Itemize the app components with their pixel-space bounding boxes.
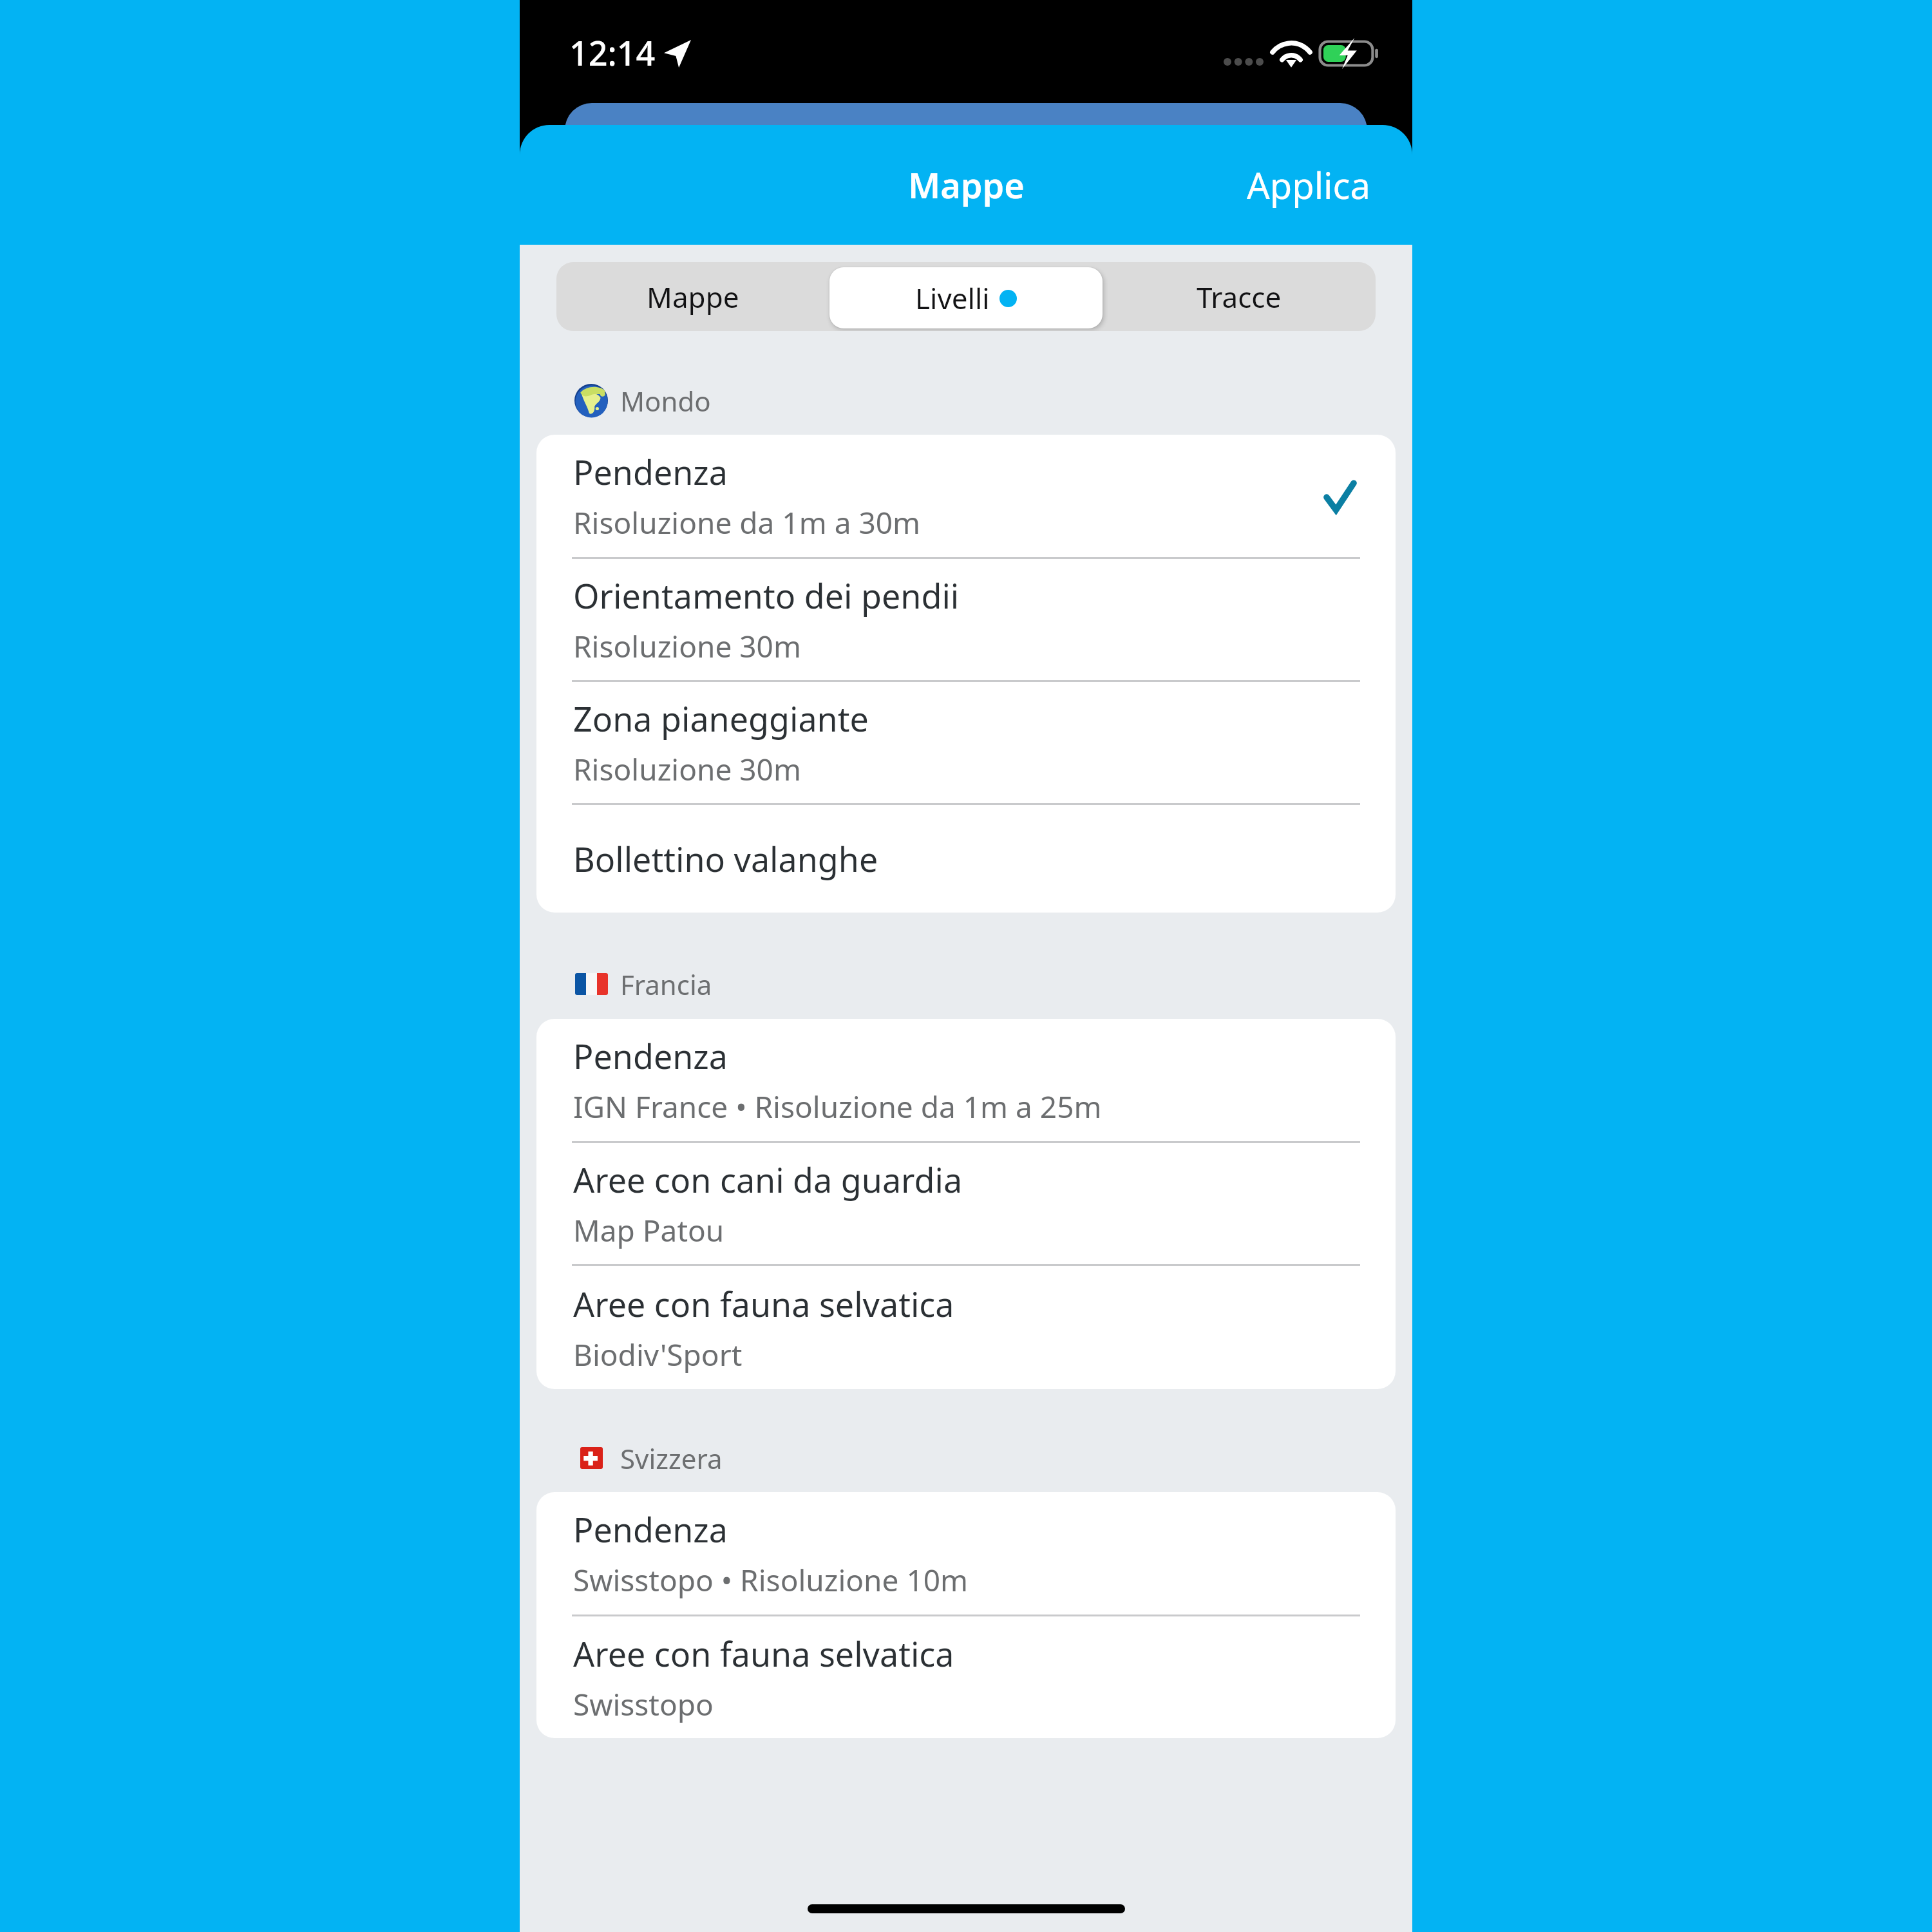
staticText: Orientamento dei pendii [573, 573, 960, 618]
staticText: IGN France • Risoluzione da 1m a 25m [573, 1086, 1102, 1127]
staticText: Map Patou [573, 1210, 724, 1251]
staticText: Pendenza [573, 1506, 728, 1552]
staticText: Risoluzione 30m [573, 749, 801, 790]
staticText: Pendenza [573, 1033, 728, 1079]
button[interactable]: Applica [1224, 151, 1412, 218]
staticText: Zona pianeggiante [573, 696, 869, 741]
button[interactable]: Tracce [1103, 262, 1376, 331]
staticText: 12:14 [569, 30, 656, 75]
other: Mondo [572, 383, 611, 419]
staticText: Bollettino valanghe [573, 836, 878, 882]
button[interactable]: Aree con fauna selvatica [536, 1266, 1396, 1389]
staticText: Francia [620, 966, 712, 1002]
other: Selected [1323, 480, 1357, 513]
button[interactable]: Bollettino valanghe [536, 805, 1396, 913]
staticText: Aree con fauna selvatica [573, 1281, 954, 1327]
button[interactable]: Pendenza [536, 435, 1396, 557]
other: Svizzera [572, 1440, 611, 1476]
button[interactable]: Mappe [556, 262, 829, 331]
staticText: Svizzera [620, 1440, 723, 1476]
button[interactable]: Zona pianeggiante [536, 682, 1396, 803]
button[interactable]: Aree con fauna selvatica [536, 1616, 1396, 1738]
button[interactable]: Livelli [829, 267, 1103, 328]
staticText: Pendenza [573, 449, 728, 495]
button[interactable]: Mappe [893, 152, 1040, 218]
button[interactable]: Aree con cani da guardia [536, 1143, 1396, 1264]
other: Francia [572, 966, 611, 1002]
staticText: Swisstopo • Risoluzione 10m [573, 1560, 969, 1600]
staticText: Biodiv'Sport [573, 1334, 743, 1375]
button[interactable]: Pendenza [536, 1019, 1396, 1141]
staticText: Swisstopo [573, 1684, 714, 1725]
staticText: Tracce [1197, 278, 1282, 316]
staticText: Applica [1247, 160, 1370, 209]
button[interactable]: Orientamento dei pendii [536, 559, 1396, 680]
staticText: Risoluzione 30m [573, 626, 801, 667]
staticText: Livelli [915, 279, 990, 317]
staticText: Mappe [647, 278, 739, 316]
staticText: Risoluzione da 1m a 30m [573, 502, 921, 543]
staticText: Aree con fauna selvatica [573, 1631, 954, 1676]
staticText: Aree con cani da guardia [573, 1157, 963, 1202]
staticText: Mondo [620, 383, 711, 419]
button[interactable]: Pendenza [536, 1492, 1396, 1615]
staticText: Mappe [908, 161, 1025, 209]
